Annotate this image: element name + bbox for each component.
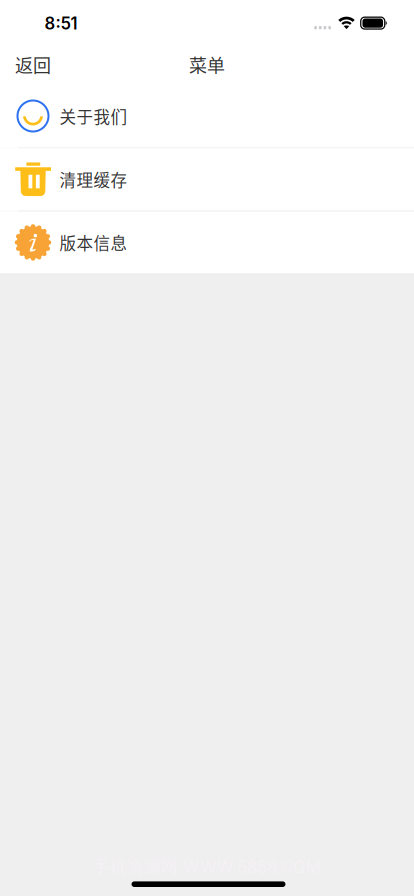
staticText: 关于我们 [59,104,127,128]
button[interactable]: 返回 [0,41,65,88]
button[interactable]: 清理缓存 [0,148,414,210]
button[interactable]: 菜单 [175,41,239,88]
staticText: 菜单 [189,51,225,78]
button[interactable]: 版本信息 [0,212,414,273]
button[interactable]: 关于我们 [0,85,414,147]
staticText: 清理缓存 [59,167,127,191]
staticText: 版本信息 [59,230,127,254]
staticText: 返回 [15,51,51,78]
staticText: 8:51 [44,13,77,34]
